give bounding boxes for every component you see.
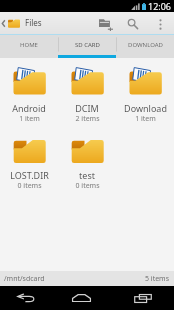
staticText: LOST.DIR <box>10 169 49 181</box>
button[interactable]: LOST.DIR <box>0 131 58 191</box>
staticText: /mnt/sdcard <box>4 274 45 284</box>
button[interactable]: Home <box>50 286 112 310</box>
button[interactable]: Recent apps <box>112 286 174 310</box>
button[interactable]: More options <box>148 12 172 34</box>
button[interactable]: SD CARD <box>58 35 116 58</box>
button[interactable]: New folder <box>94 12 117 34</box>
staticText: HOME <box>20 41 38 49</box>
button[interactable]: HOME <box>0 35 58 58</box>
staticText: SD CARD <box>75 41 100 49</box>
staticText: 1 item <box>19 114 40 124</box>
staticText: Files <box>25 17 42 28</box>
button[interactable]: DOWNLOAD <box>116 35 174 58</box>
button[interactable]: Download <box>116 64 174 124</box>
staticText: 5 items <box>145 274 170 284</box>
staticText: 1 item <box>135 114 156 124</box>
button[interactable]: Back <box>0 286 50 310</box>
staticText: DCIM <box>75 102 99 114</box>
staticText: 2 items <box>75 114 100 124</box>
staticText: test <box>79 169 95 181</box>
button[interactable]: Android <box>0 64 58 124</box>
button[interactable]: test <box>58 131 116 191</box>
staticText: 12:06 <box>148 0 172 12</box>
staticText: 0 items <box>17 181 42 191</box>
staticText: Download <box>124 102 167 114</box>
button[interactable]: Search <box>117 12 148 34</box>
staticText: Android <box>12 102 46 114</box>
button[interactable]: DCIM <box>58 64 116 124</box>
button[interactable]: Files <box>0 12 45 34</box>
staticText: DOWNLOAD <box>128 41 163 49</box>
staticText: 0 items <box>75 181 100 191</box>
